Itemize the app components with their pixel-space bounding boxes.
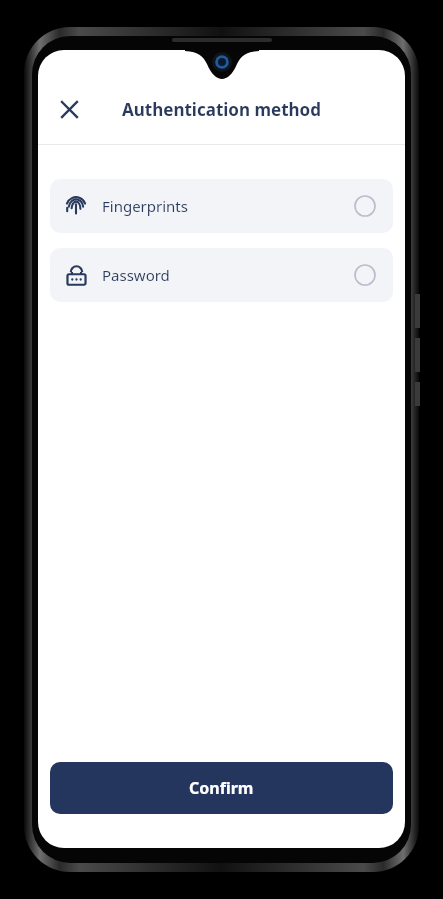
button[interactable]: Password — [50, 248, 393, 302]
staticText: Authentication method — [38, 98, 405, 121]
button[interactable]: Confirm — [50, 762, 393, 814]
button[interactable]: Fingerprints — [50, 179, 393, 233]
staticText: Fingerprints — [102, 196, 188, 216]
staticText: Password — [102, 265, 170, 285]
staticText: Confirm — [189, 777, 254, 799]
button[interactable]: Close — [47, 87, 91, 131]
